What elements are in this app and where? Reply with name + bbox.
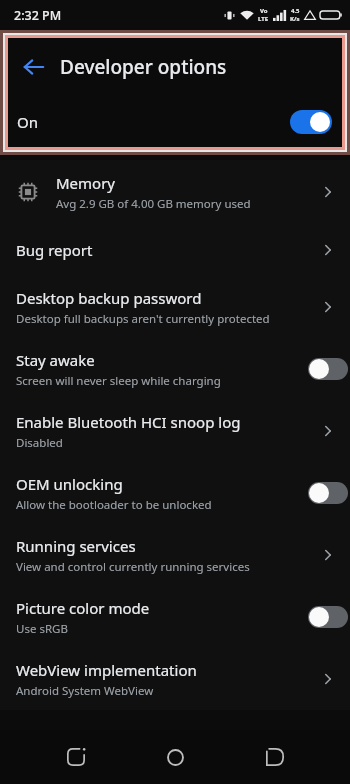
button[interactable]: On (8, 96, 342, 147)
staticText: WebView implementation (16, 660, 197, 680)
staticText: Disabled (16, 435, 63, 451)
staticText: Allow the bootloader to be unlocked (16, 497, 212, 513)
staticText: Enable Bluetooth HCI snoop log (16, 412, 241, 432)
button[interactable]: OEM unlocking (0, 462, 350, 524)
staticText: View and control currently running servi… (16, 559, 250, 575)
staticText: 4.5 (291, 7, 300, 15)
staticText: Stay awake (16, 350, 95, 370)
staticText: K/s (290, 15, 300, 23)
staticText: Bug report (16, 240, 93, 260)
staticText: Picture color mode (16, 598, 150, 618)
button[interactable]: Picture color mode (0, 586, 350, 648)
button[interactable]: Memory (0, 160, 350, 224)
staticText: Memory (56, 173, 116, 193)
button[interactable]: Back (251, 733, 299, 781)
staticText: 2:32 PM (14, 7, 62, 24)
staticText: On (17, 112, 38, 132)
staticText: Desktop backup password (16, 288, 202, 308)
button[interactable]: Developer options enabled (290, 110, 332, 134)
staticText: Use sRGB (16, 621, 68, 637)
button[interactable]: Bug report (0, 224, 350, 276)
staticText: Avg 2.9 GB of 4.00 GB memory used (56, 196, 251, 212)
button[interactable]: WebView implementation (0, 648, 350, 710)
staticText: Desktop full backups aren't currently pr… (16, 311, 270, 327)
button[interactable]: Stay awake (308, 358, 348, 380)
button[interactable]: Running services (0, 524, 350, 586)
staticText: LTE (258, 15, 269, 23)
button[interactable]: Picture color mode (308, 606, 348, 628)
staticText: OEM unlocking (16, 474, 123, 494)
staticText: Running services (16, 536, 136, 556)
button[interactable]: Home (151, 733, 199, 781)
button[interactable]: Recents (52, 733, 100, 781)
staticText: Vo (260, 7, 268, 15)
button[interactable]: Stay awake (0, 338, 350, 400)
staticText: Screen will never sleep while charging (16, 373, 221, 389)
button[interactable]: Enable Bluetooth HCI snoop log (0, 400, 350, 462)
button[interactable]: OEM unlocking (308, 482, 348, 504)
staticText: Developer options (60, 54, 227, 80)
staticText: Android System WebView (16, 683, 154, 699)
button[interactable]: Back (14, 47, 54, 87)
button[interactable]: Desktop backup password (0, 276, 350, 338)
